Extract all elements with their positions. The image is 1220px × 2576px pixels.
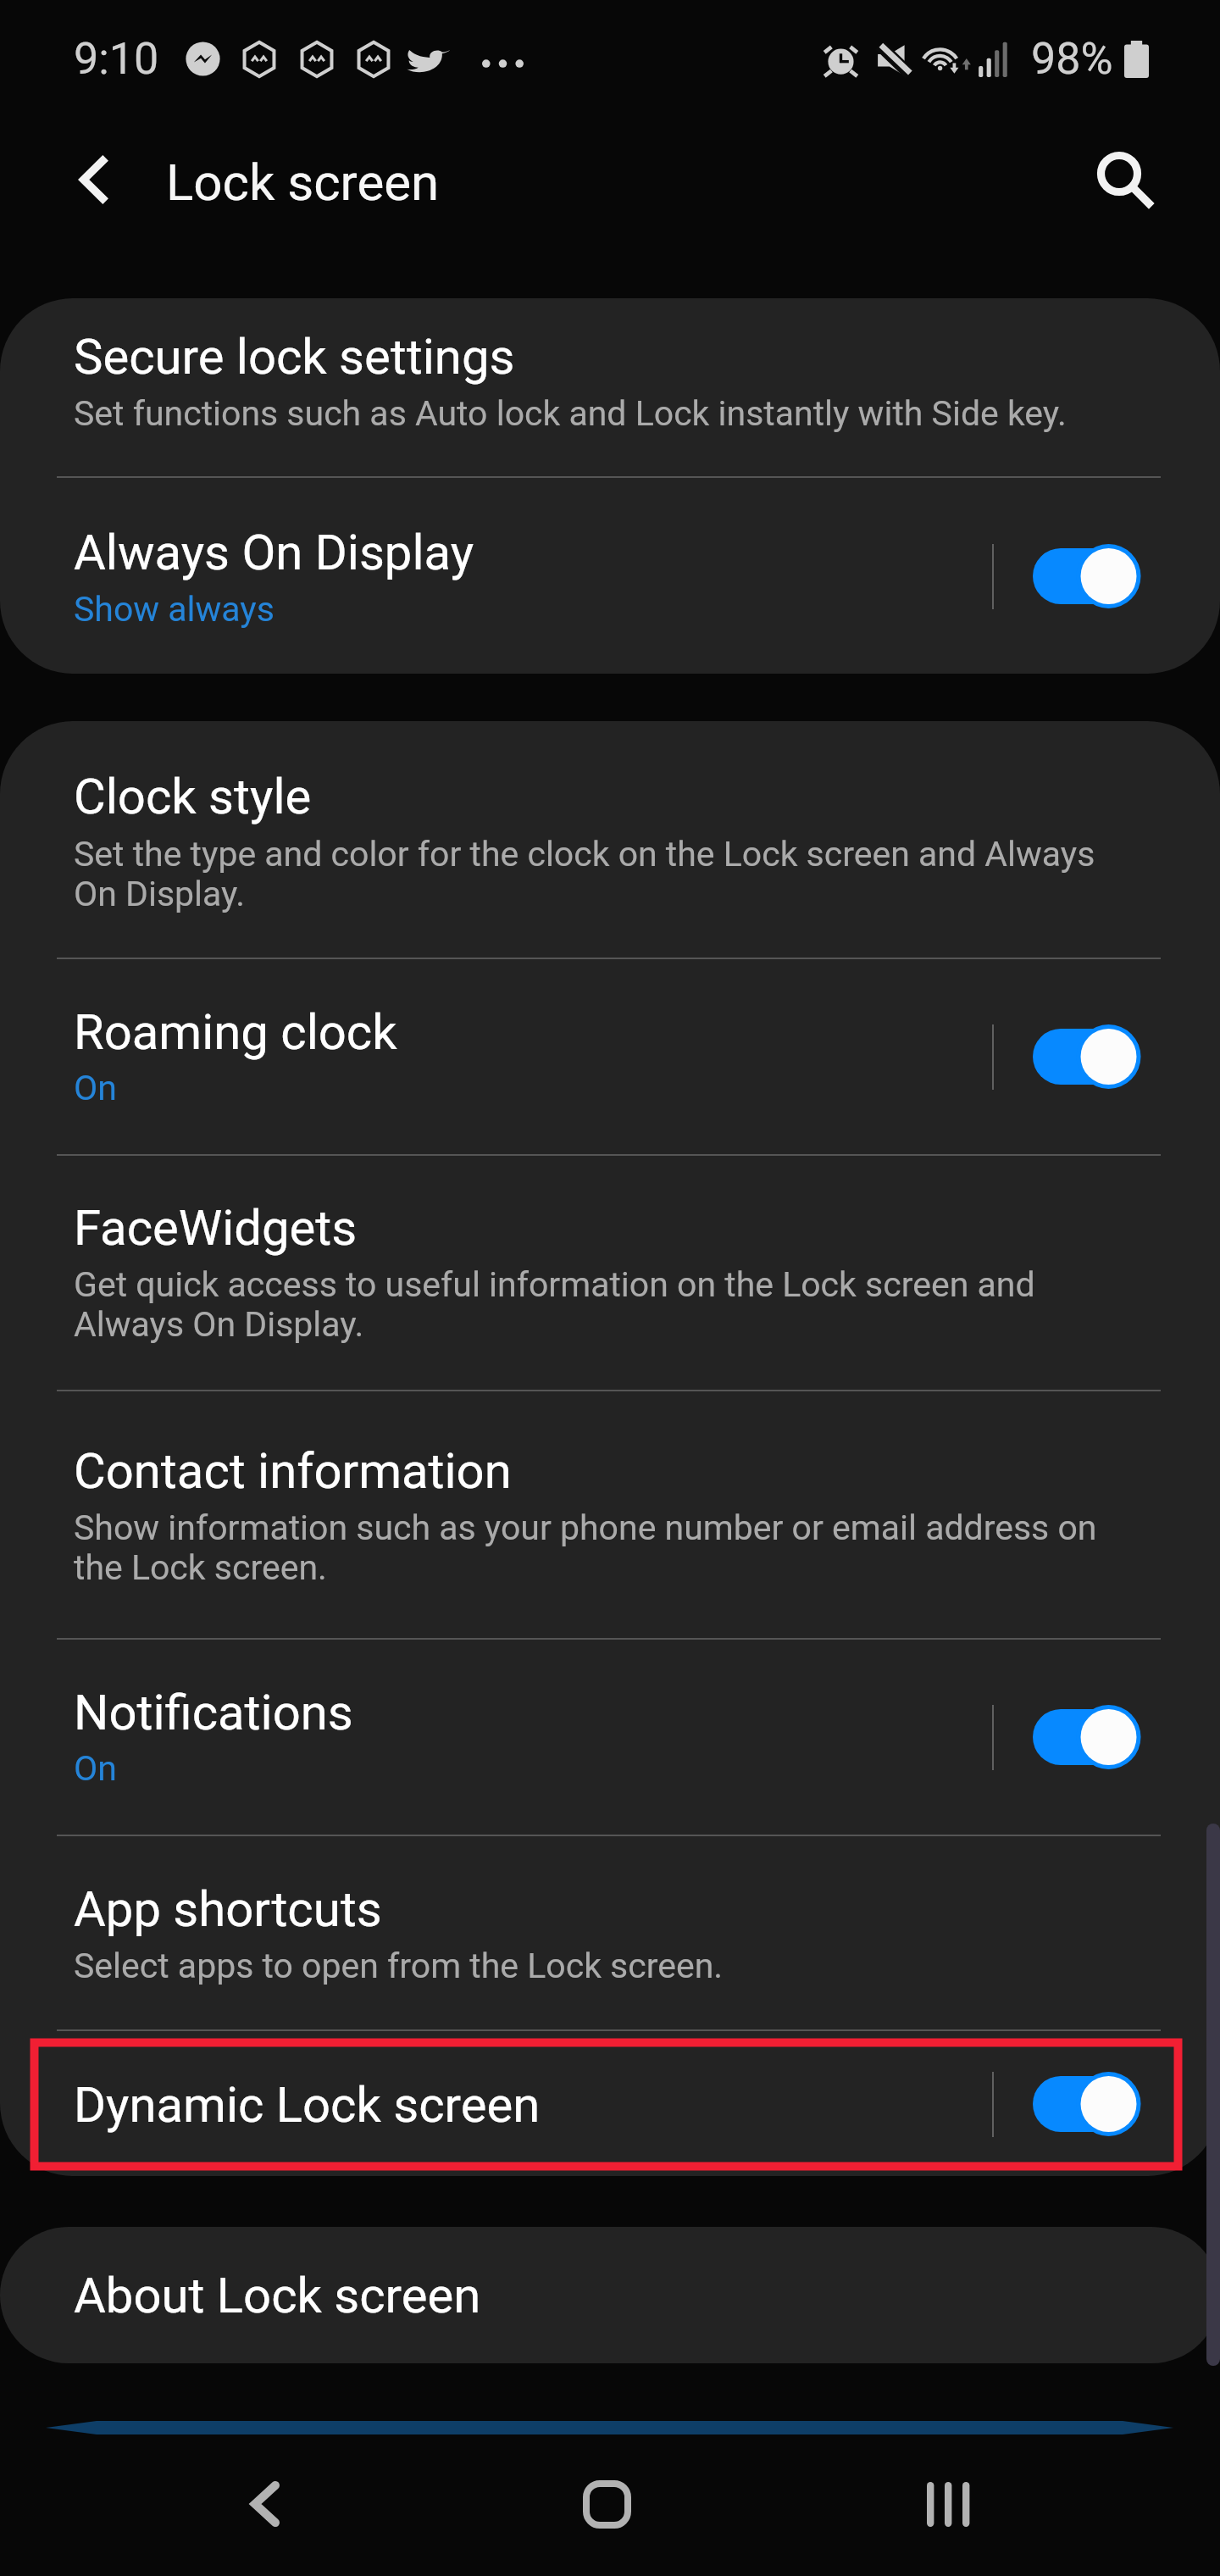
staticText: On <box>74 1068 117 1108</box>
staticText: Roaming clock <box>74 1003 397 1061</box>
staticText: Dynamic Lock screen <box>74 2076 541 2134</box>
button[interactable]: Recent apps <box>897 2453 999 2555</box>
button[interactable]: Back <box>214 2453 316 2555</box>
button[interactable]: Dynamic Lock screen <box>0 2031 1220 2176</box>
staticText: Set the type and color for the clock on … <box>74 834 1095 914</box>
button[interactable]: Navigate up <box>42 129 144 230</box>
button[interactable]: Always On Display <box>0 478 1220 674</box>
staticText: App shortcuts <box>74 1880 382 1938</box>
button[interactable]: Roaming clock <box>0 959 1220 1154</box>
staticText: Show information such as your phone numb… <box>74 1507 1097 1588</box>
button[interactable]: Clock style <box>0 721 1220 958</box>
button[interactable]: Secure lock settings <box>0 298 1220 476</box>
staticText: About Lock screen <box>74 2267 481 2324</box>
staticText: Secure lock settings <box>74 328 515 386</box>
button[interactable]: Home <box>556 2453 657 2555</box>
staticText: Get quick access to useful information o… <box>74 1264 1035 1345</box>
button[interactable]: App shortcuts <box>0 1836 1220 2029</box>
button[interactable]: FaceWidgets <box>0 1156 1220 1390</box>
staticText: Always On Display <box>74 524 474 581</box>
button[interactable]: Search <box>1076 130 1178 232</box>
staticText: 98% <box>1031 33 1113 85</box>
button[interactable]: About Lock screen <box>0 2227 1220 2363</box>
staticText: Select apps to open from the Lock screen… <box>74 1946 724 1986</box>
staticText: On <box>74 1748 117 1789</box>
staticText: Set functions such as Auto lock and Lock… <box>74 393 1067 434</box>
staticText: FaceWidgets <box>74 1199 358 1257</box>
button[interactable]: Notifications <box>0 1640 1220 1835</box>
staticText: 9:10 <box>74 33 159 85</box>
staticText: Clock style <box>74 768 312 825</box>
staticText: Lock screen <box>166 153 440 212</box>
staticText: Contact information <box>74 1442 512 1500</box>
staticText: Notifications <box>74 1684 353 1741</box>
button[interactable]: Contact information <box>0 1391 1220 1638</box>
staticText: Show always <box>74 589 274 630</box>
